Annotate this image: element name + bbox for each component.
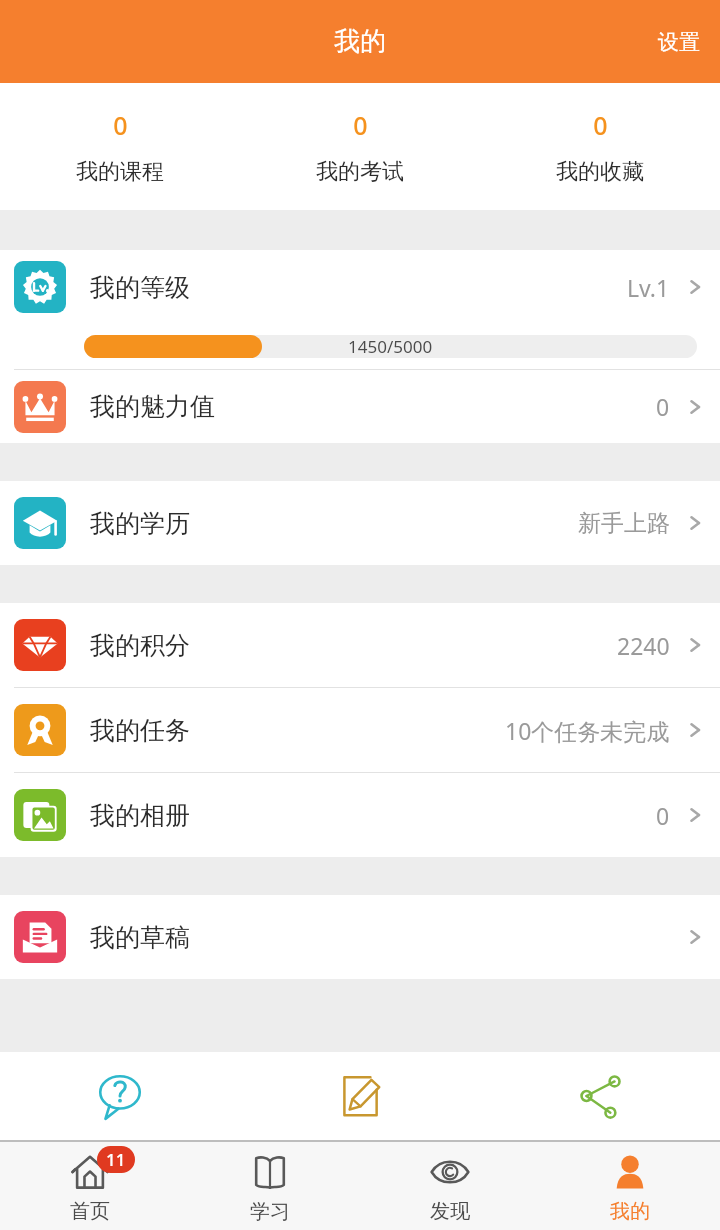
staticText: 我的草稿 xyxy=(90,922,190,953)
button[interactable]: 学习 xyxy=(180,1142,360,1230)
staticText: 我的考试 xyxy=(316,158,404,186)
button[interactable]: 我的等级 xyxy=(0,250,720,324)
staticText: 我的任务 xyxy=(90,715,190,746)
button[interactable]: 设置 xyxy=(638,11,720,73)
staticText: 我的课程 xyxy=(76,158,164,186)
staticText: 11 xyxy=(106,1148,126,1171)
button[interactable]: 我的任务 xyxy=(0,688,720,772)
button[interactable]: Help xyxy=(0,1052,240,1140)
staticText: 0 xyxy=(353,108,368,142)
staticText: 设置 xyxy=(658,29,700,55)
staticText: 我的 xyxy=(610,1199,650,1224)
button[interactable]: Write xyxy=(240,1052,480,1140)
staticText: 首页 xyxy=(70,1199,110,1224)
staticText: 0 xyxy=(593,108,608,142)
staticText: 我的等级 xyxy=(90,272,190,303)
staticText: 发现 xyxy=(430,1199,470,1224)
button[interactable]: 0 xyxy=(240,83,480,210)
staticText: 我的 xyxy=(334,25,386,58)
staticText: 新手上路 xyxy=(578,509,670,538)
button[interactable]: 发现 xyxy=(360,1142,540,1230)
button[interactable]: 我的积分 xyxy=(0,603,720,687)
button[interactable]: 我的学历 xyxy=(0,481,720,565)
staticText: 我的积分 xyxy=(90,630,190,661)
button[interactable]: 我的相册 xyxy=(0,773,720,857)
button[interactable]: 我的魅力值 xyxy=(0,370,720,443)
button[interactable]: Share xyxy=(480,1052,720,1140)
staticText: 我的相册 xyxy=(90,800,190,831)
staticText: 我的学历 xyxy=(90,508,190,539)
button[interactable]: 我的草稿 xyxy=(0,895,720,979)
button[interactable]: 0 xyxy=(480,83,720,210)
staticText: 2240 xyxy=(617,630,670,661)
staticText: 10个任务未完成 xyxy=(505,715,670,746)
button[interactable]: 0 xyxy=(0,83,240,210)
staticText: 0 xyxy=(113,108,128,142)
button[interactable]: 11 xyxy=(0,1142,180,1230)
staticText: 我的魅力值 xyxy=(90,391,215,422)
button[interactable]: 我的 xyxy=(540,1142,720,1230)
staticText: 学习 xyxy=(250,1199,290,1224)
staticText: 1450/5000 xyxy=(348,335,433,358)
staticText: 我的收藏 xyxy=(556,158,644,186)
staticText: 0 xyxy=(656,391,670,422)
staticText: 0 xyxy=(656,800,670,831)
staticText: Lv.1 xyxy=(627,272,670,303)
